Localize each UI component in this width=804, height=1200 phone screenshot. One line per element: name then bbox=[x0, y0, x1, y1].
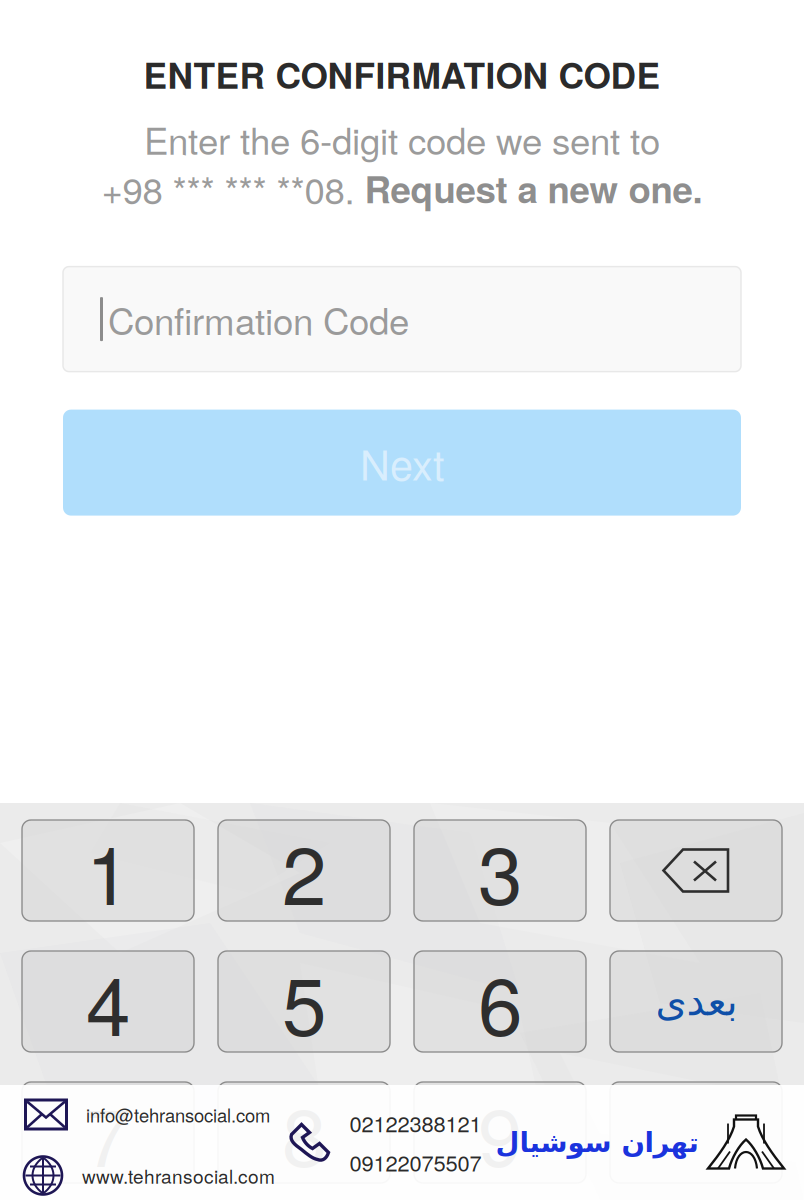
button[interactable]: Blank bbox=[610, 1082, 782, 1183]
staticText: Enter the 6-digit code we sent to bbox=[144, 113, 660, 165]
staticText: تهران سوشیال bbox=[495, 1126, 698, 1158]
button[interactable]: Request a new one. bbox=[364, 162, 702, 215]
staticText: 3 bbox=[478, 813, 522, 928]
staticText: 1 bbox=[86, 813, 130, 928]
button[interactable]: 3 bbox=[414, 820, 586, 921]
staticText: 9 bbox=[478, 1075, 522, 1190]
staticText: www.tehransocial.com bbox=[82, 1162, 275, 1189]
button[interactable]: 5 bbox=[218, 951, 390, 1052]
staticText: 5 bbox=[282, 944, 326, 1059]
button[interactable]: 1 bbox=[22, 820, 194, 921]
staticText: Confirmation Code bbox=[108, 293, 409, 345]
staticText: 02122388121 bbox=[349, 1107, 481, 1138]
staticText: 7 bbox=[86, 1075, 130, 1190]
button[interactable]: 4 bbox=[22, 951, 194, 1052]
button[interactable]: Next bbox=[63, 410, 741, 516]
staticText: Request a new one. bbox=[364, 162, 702, 215]
staticText: 8 bbox=[282, 1075, 326, 1190]
button[interactable]: 7 bbox=[22, 1082, 194, 1183]
button[interactable]: Next bbox=[610, 951, 782, 1052]
staticText: +98 *** *** **08. bbox=[101, 162, 364, 215]
button[interactable]: 9 bbox=[414, 1082, 586, 1183]
button[interactable]: Delete bbox=[610, 820, 782, 921]
staticText: info@tehransocial.com bbox=[86, 1101, 270, 1128]
button[interactable]: 8 bbox=[218, 1082, 390, 1183]
staticText: ENTER CONFIRMATION CODE bbox=[143, 49, 660, 100]
staticText: 6 bbox=[478, 944, 522, 1059]
staticText: Next bbox=[360, 433, 444, 492]
button[interactable]: 2 bbox=[218, 820, 390, 921]
staticText: بعدی bbox=[655, 978, 737, 1025]
staticText: 09122075507 bbox=[349, 1146, 481, 1178]
button[interactable]: Confirmation Code bbox=[63, 267, 741, 372]
staticText: 2 bbox=[282, 813, 326, 928]
staticText: 4 bbox=[86, 944, 130, 1059]
button[interactable]: 6 bbox=[414, 951, 586, 1052]
